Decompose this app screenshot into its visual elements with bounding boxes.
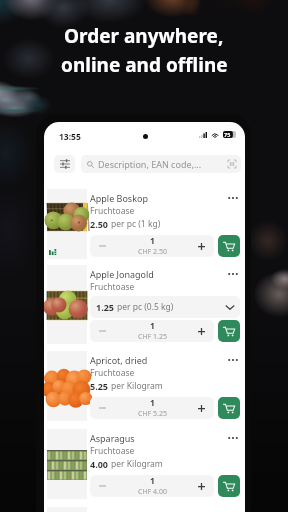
button[interactable]: Apple Jonagold: [44, 265, 245, 344]
button[interactable]: Decrease quantity: [90, 235, 115, 257]
button[interactable]: Description, EAN code,...: [81, 155, 241, 173]
button[interactable]: More options: [226, 268, 240, 280]
button[interactable]: Decrease quantity: [90, 475, 115, 497]
staticText: per pc (1 kg): [111, 218, 161, 230]
staticText: 1: [150, 320, 155, 332]
button[interactable]: Add to cart: [218, 320, 240, 342]
staticText: 1: [150, 475, 155, 487]
staticText: Fruchtoase: [90, 205, 135, 217]
staticText: Fruchtoase: [90, 367, 135, 379]
button[interactable]: 1.25: [90, 296, 240, 318]
staticText: per Kilogram: [111, 380, 163, 392]
staticText: CHF 4.00: [138, 487, 167, 497]
staticText: per Kilogram: [111, 458, 163, 470]
button[interactable]: Add to cart: [218, 475, 240, 497]
button[interactable]: More options: [226, 432, 240, 444]
staticText: Fruchtoase: [90, 445, 135, 457]
staticText: 1: [150, 235, 155, 247]
button[interactable]: Increase quantity: [189, 320, 214, 342]
staticText: 5.25: [90, 380, 108, 392]
button[interactable]: Increase quantity: [189, 397, 214, 419]
staticText: Apple Boskop: [90, 192, 226, 204]
staticText: 13:55: [59, 131, 81, 143]
button[interactable]: Decrease quantity: [90, 397, 115, 419]
staticText: per pc (0.5 kg): [117, 301, 174, 313]
button[interactable]: Apple Boskop: [44, 189, 245, 259]
staticText: 75: [224, 131, 231, 138]
button[interactable]: More options: [226, 192, 240, 204]
staticText: 2.50: [90, 218, 108, 230]
staticText: 4.00: [90, 458, 108, 470]
staticText: Order anywhere,: [64, 23, 224, 49]
staticText: 1.25: [96, 301, 114, 313]
button[interactable]: Decrease quantity: [90, 320, 115, 342]
button[interactable]: Add to cart: [218, 397, 240, 419]
staticText: CHF 2.50: [138, 247, 167, 257]
button[interactable]: Apricot, dried: [44, 351, 245, 421]
button[interactable]: Add to cart: [218, 235, 240, 257]
staticText: Description, EAN code,...: [98, 158, 225, 170]
staticText: 1: [150, 397, 155, 409]
staticText: Apple Jonagold: [90, 268, 226, 280]
staticText: online and offline: [61, 52, 228, 78]
staticText: CHF 1.25: [138, 332, 167, 342]
staticText: CHF 5.25: [138, 409, 167, 419]
button[interactable]: Filter: [54, 155, 75, 173]
staticText: Apricot, dried: [90, 354, 226, 366]
button[interactable]: Increase quantity: [189, 475, 214, 497]
button[interactable]: Avocado: [44, 507, 245, 512]
button[interactable]: More options: [226, 354, 240, 366]
button[interactable]: Asparagus: [44, 429, 245, 499]
button[interactable]: Increase quantity: [189, 235, 214, 257]
staticText: Asparagus: [90, 432, 226, 444]
staticText: Fruchtoase: [90, 281, 135, 293]
